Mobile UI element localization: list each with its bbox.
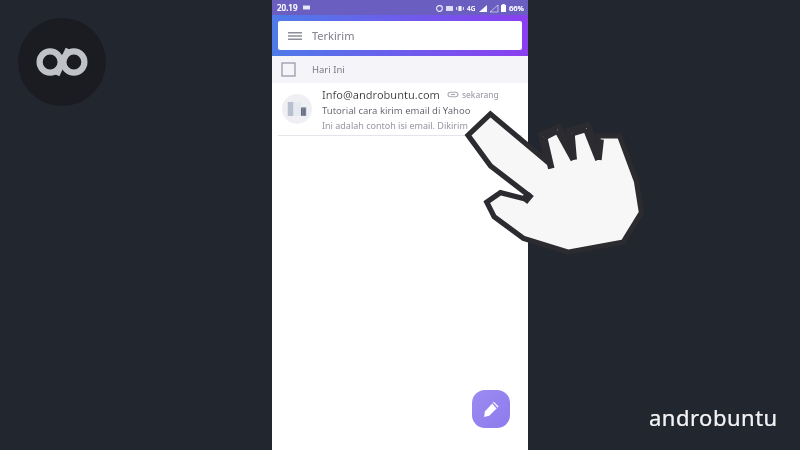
other: Menu bbox=[288, 29, 302, 43]
staticText: Terkirim bbox=[312, 28, 355, 43]
staticText: Tutorial cara kirim email di Yahoo bbox=[322, 104, 471, 117]
staticText: androbuntu bbox=[649, 402, 778, 432]
staticText: 4G bbox=[467, 4, 476, 13]
staticText: sekarang bbox=[462, 89, 499, 101]
staticText: 20.19 bbox=[277, 2, 298, 13]
button[interactable]: Select all bbox=[272, 56, 528, 83]
staticText: Ini adalah contoh isi email. Dikirim bbox=[322, 119, 468, 131]
staticText: Info@androbuntu.com bbox=[322, 87, 440, 102]
staticText: 66% bbox=[509, 3, 524, 13]
staticText: Hari Ini bbox=[312, 63, 345, 76]
button[interactable]: Compose bbox=[472, 390, 510, 428]
button[interactable]: Info@androbuntu.com bbox=[272, 83, 528, 136]
other: Select all bbox=[282, 63, 295, 76]
button[interactable]: Menu bbox=[278, 21, 522, 50]
